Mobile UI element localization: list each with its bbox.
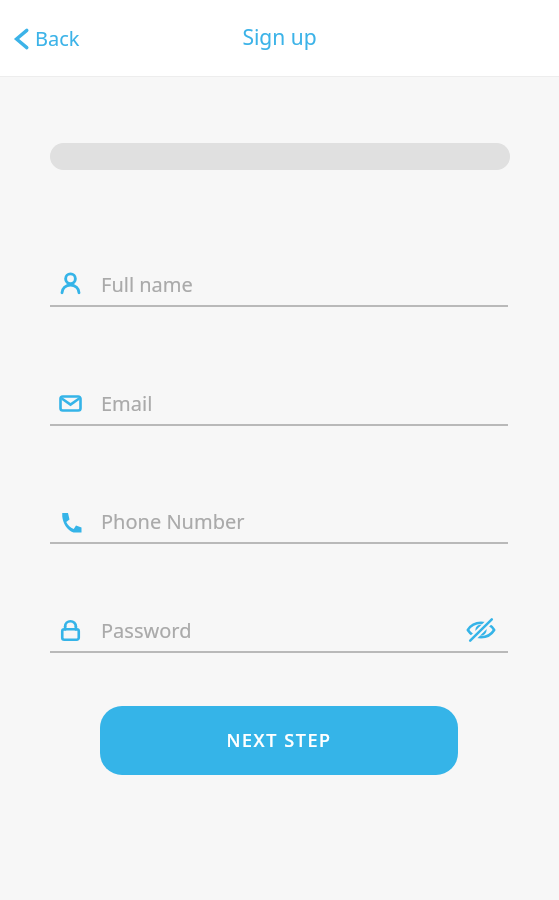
staticText: Email — [101, 390, 153, 417]
staticText: Password — [101, 617, 192, 644]
button[interactable]: NEXT STEP — [100, 706, 458, 775]
button[interactable]: Phone Number — [50, 502, 508, 550]
button[interactable]: Email — [50, 384, 508, 432]
staticText: Phone Number — [101, 508, 245, 535]
button[interactable]: Show password — [458, 607, 504, 653]
button[interactable]: Back — [8, 17, 86, 60]
staticText: Full name — [101, 271, 193, 298]
staticText: Back — [35, 25, 80, 52]
button[interactable]: Password — [50, 611, 508, 659]
staticText: NEXT STEP — [226, 728, 332, 753]
button[interactable]: Full name — [50, 265, 508, 313]
staticText: Sign up — [242, 23, 317, 52]
